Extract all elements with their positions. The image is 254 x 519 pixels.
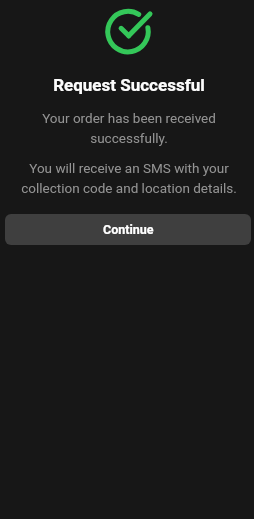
staticText: Your order has been received successfull… xyxy=(29,110,229,146)
staticText: Continue xyxy=(103,222,154,237)
staticText: Request Successful xyxy=(53,75,205,95)
staticText: You will receive an SMS with your collec… xyxy=(17,160,241,196)
button[interactable]: Continue xyxy=(5,214,251,245)
